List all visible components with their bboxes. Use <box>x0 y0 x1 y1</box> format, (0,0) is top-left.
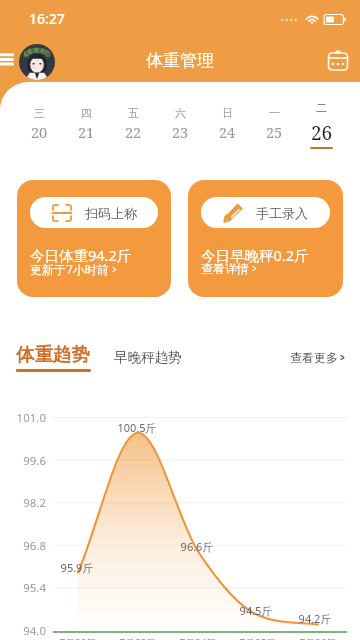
button[interactable]: 三 <box>15 96 63 156</box>
staticText: 7月22日 <box>108 636 168 640</box>
button[interactable]: 六 <box>157 96 204 156</box>
button[interactable]: 四 <box>63 96 110 156</box>
staticText: 五 <box>128 106 139 120</box>
staticText: 22 <box>125 122 142 142</box>
staticText: 101.0 <box>2 410 46 426</box>
button[interactable]: 一 <box>251 96 298 156</box>
staticText: 六 <box>175 106 186 120</box>
staticText: 96.8 <box>2 538 46 554</box>
staticText: 体重趋势 <box>16 343 90 366</box>
staticText: 手工录入 <box>256 205 308 221</box>
staticText: 早晚秤趋势 <box>114 349 182 366</box>
button[interactable]: 早晚秤趋势 <box>114 349 182 366</box>
button[interactable]: 体重趋势 <box>16 343 91 372</box>
button[interactable]: 日 <box>204 96 251 156</box>
staticText: 21 <box>78 122 95 142</box>
staticText: 7月20日 <box>48 636 108 640</box>
staticText: 94.0 <box>2 623 46 639</box>
staticText: 体重管理 <box>146 50 214 71</box>
staticText: 今日体重94.2斤 <box>30 245 132 265</box>
staticText: 23 <box>172 122 189 142</box>
staticText: 16:27 <box>29 9 65 28</box>
button[interactable]: 扫码上称 <box>17 180 171 297</box>
staticText: 查看详情 <box>201 261 249 276</box>
staticText: 7月26日 <box>288 636 348 640</box>
staticText: 100.5斤 <box>107 420 167 435</box>
staticText: 四 <box>81 106 92 120</box>
staticText: 20 <box>31 122 48 142</box>
staticText: 日 <box>222 106 233 120</box>
staticText: 25 <box>266 122 283 142</box>
staticText: 26 <box>311 120 333 146</box>
button[interactable]: Menu <box>0 50 16 74</box>
staticText: 扫码上称 <box>85 205 137 221</box>
staticText: 99.6 <box>2 453 46 469</box>
staticText: 95.9斤 <box>47 560 107 575</box>
staticText: 更新于7小时前 <box>30 261 109 277</box>
staticText: 94.2斤 <box>285 611 345 626</box>
staticText: 96.6斤 <box>167 539 227 554</box>
staticText: 7月25日 <box>228 636 288 640</box>
staticText: 二 <box>316 101 327 115</box>
button[interactable]: 查看更多 <box>290 350 347 365</box>
button[interactable]: 二 <box>298 96 345 156</box>
staticText: 7月24日 <box>168 636 228 640</box>
staticText: 94.5斤 <box>226 603 286 618</box>
button[interactable]: Calendar <box>323 45 353 75</box>
button[interactable]: 五 <box>110 96 157 156</box>
staticText: 95.4 <box>2 580 46 596</box>
button[interactable]: 手工录入 <box>188 180 343 297</box>
button[interactable]: Profile <box>19 44 55 80</box>
staticText: 三 <box>34 106 45 120</box>
staticText: 今日早晚秤0.2斤 <box>201 245 309 265</box>
staticText: 查看更多 <box>290 350 338 365</box>
staticText: 98.2 <box>2 495 46 511</box>
staticText: 24 <box>219 122 236 142</box>
staticText: 一 <box>269 106 280 120</box>
